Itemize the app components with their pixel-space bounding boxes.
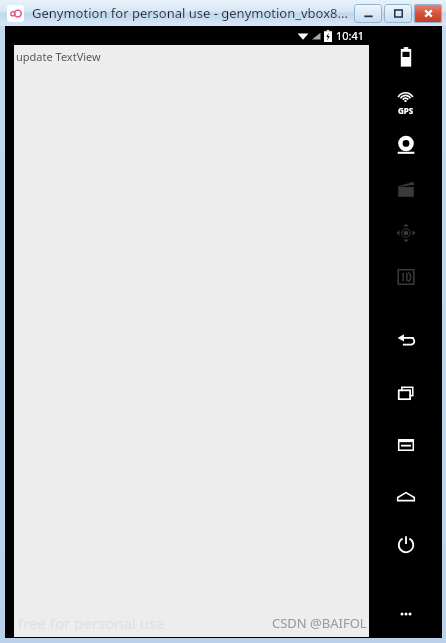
button[interactable]: Minimize <box>354 4 382 23</box>
button[interactable]: Menu <box>369 432 442 458</box>
staticText: GPS <box>398 105 414 116</box>
button[interactable]: Camera <box>369 132 442 158</box>
staticText: update TextView <box>16 49 101 64</box>
staticText: CSDN @BAIFOL <box>272 614 367 632</box>
button[interactable]: Close <box>414 4 442 23</box>
button[interactable]: Maximize <box>384 4 412 23</box>
button[interactable]: Recents <box>369 380 442 406</box>
staticText: 10:41 <box>336 28 365 43</box>
staticText: Genymotion for personal use - genymotion… <box>32 4 348 22</box>
staticText: free for personal use <box>18 613 165 633</box>
button[interactable]: Identifiers <box>369 264 442 290</box>
button[interactable]: Video <box>369 176 442 202</box>
button[interactable]: Battery <box>369 44 442 70</box>
button[interactable]: GPS <box>369 88 442 116</box>
button[interactable]: More options <box>369 604 442 624</box>
button[interactable]: Back <box>369 328 442 354</box>
button[interactable]: Home <box>369 484 442 510</box>
button[interactable]: Navigation pad <box>369 220 442 246</box>
button[interactable]: Power <box>369 532 442 558</box>
